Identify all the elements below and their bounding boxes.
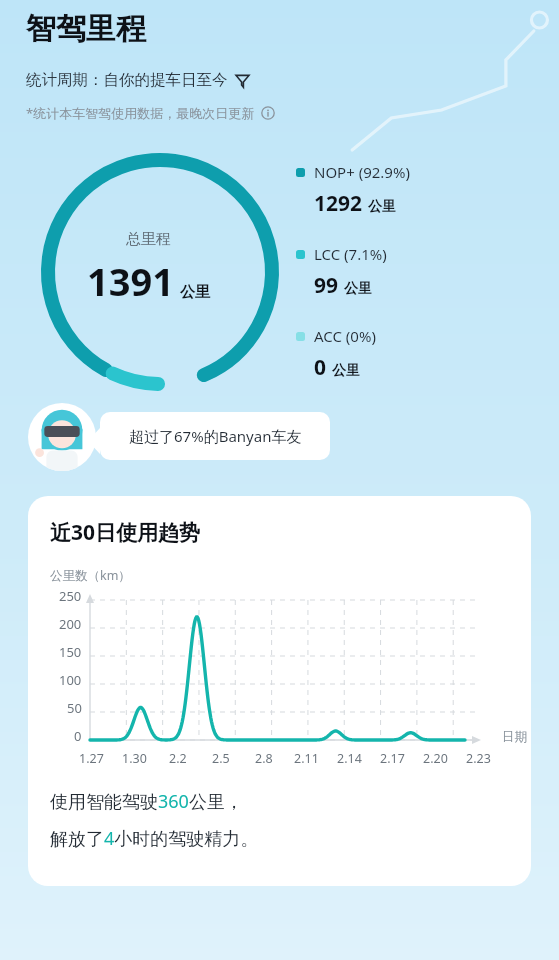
button[interactable]: LCC (7.1%) bbox=[296, 244, 387, 300]
other: Info bbox=[261, 106, 275, 120]
staticText: 200 bbox=[59, 615, 82, 633]
staticText: 智驾里程 bbox=[26, 10, 146, 48]
staticText: LCC (7.1%) bbox=[314, 244, 387, 264]
staticText: 日期 bbox=[502, 729, 527, 745]
staticText: NOP+ (92.9%) bbox=[314, 162, 410, 182]
staticText: 250 bbox=[59, 587, 82, 605]
staticText: 公里 bbox=[368, 198, 396, 216]
button[interactable]: 近30日使用趋势 bbox=[28, 496, 531, 886]
staticText: 超过了67%的Banyan车友 bbox=[129, 426, 302, 446]
button[interactable]: ACC (0%) bbox=[296, 326, 376, 382]
staticText: 2.8 bbox=[255, 750, 273, 767]
staticText: 2.20 bbox=[423, 750, 448, 767]
button[interactable]: Avatar bbox=[28, 403, 96, 471]
staticText: 使用智能驾驶360公里， bbox=[50, 789, 243, 814]
button[interactable]: 统计周期：自你的提车日至今 bbox=[26, 70, 250, 90]
staticText: 0 bbox=[314, 353, 327, 382]
staticText: 1.27 bbox=[79, 750, 104, 767]
other: Filter bbox=[235, 73, 250, 88]
staticText: 公里 bbox=[180, 283, 210, 302]
staticText: 解放了4小时的驾驶精力。 bbox=[50, 826, 259, 851]
staticText: 公里 bbox=[344, 280, 372, 298]
button[interactable]: NOP+ (92.9%) bbox=[296, 162, 410, 218]
staticText: 0 bbox=[74, 727, 82, 745]
staticText: 2.11 bbox=[294, 750, 319, 767]
staticText: 100 bbox=[59, 671, 82, 689]
staticText: 近30日使用趋势 bbox=[50, 518, 201, 547]
staticText: 公里数（km） bbox=[50, 567, 131, 584]
staticText: 2.14 bbox=[337, 750, 362, 767]
staticText: 2.23 bbox=[466, 750, 491, 767]
staticText: 统计周期：自你的提车日至今 bbox=[26, 70, 228, 90]
staticText: 99 bbox=[314, 271, 339, 300]
staticText: 总里程 bbox=[126, 230, 171, 249]
staticText: 2.17 bbox=[380, 750, 405, 767]
staticText: 2.2 bbox=[169, 750, 187, 767]
staticText: 1292 bbox=[314, 189, 363, 218]
staticText: 1.30 bbox=[122, 750, 147, 767]
staticText: 2.5 bbox=[212, 750, 230, 767]
staticText: *统计本车智驾使用数据，最晚次日更新 bbox=[26, 104, 255, 122]
staticText: ACC (0%) bbox=[314, 326, 376, 346]
staticText: 50 bbox=[67, 699, 82, 717]
button[interactable]: 超过了67%的Banyan车友 bbox=[100, 412, 330, 460]
staticText: 1391 bbox=[87, 255, 174, 307]
staticText: 公里 bbox=[332, 362, 360, 380]
staticText: 150 bbox=[59, 643, 82, 661]
button[interactable]: *统计本车智驾使用数据，最晚次日更新 bbox=[26, 104, 275, 122]
